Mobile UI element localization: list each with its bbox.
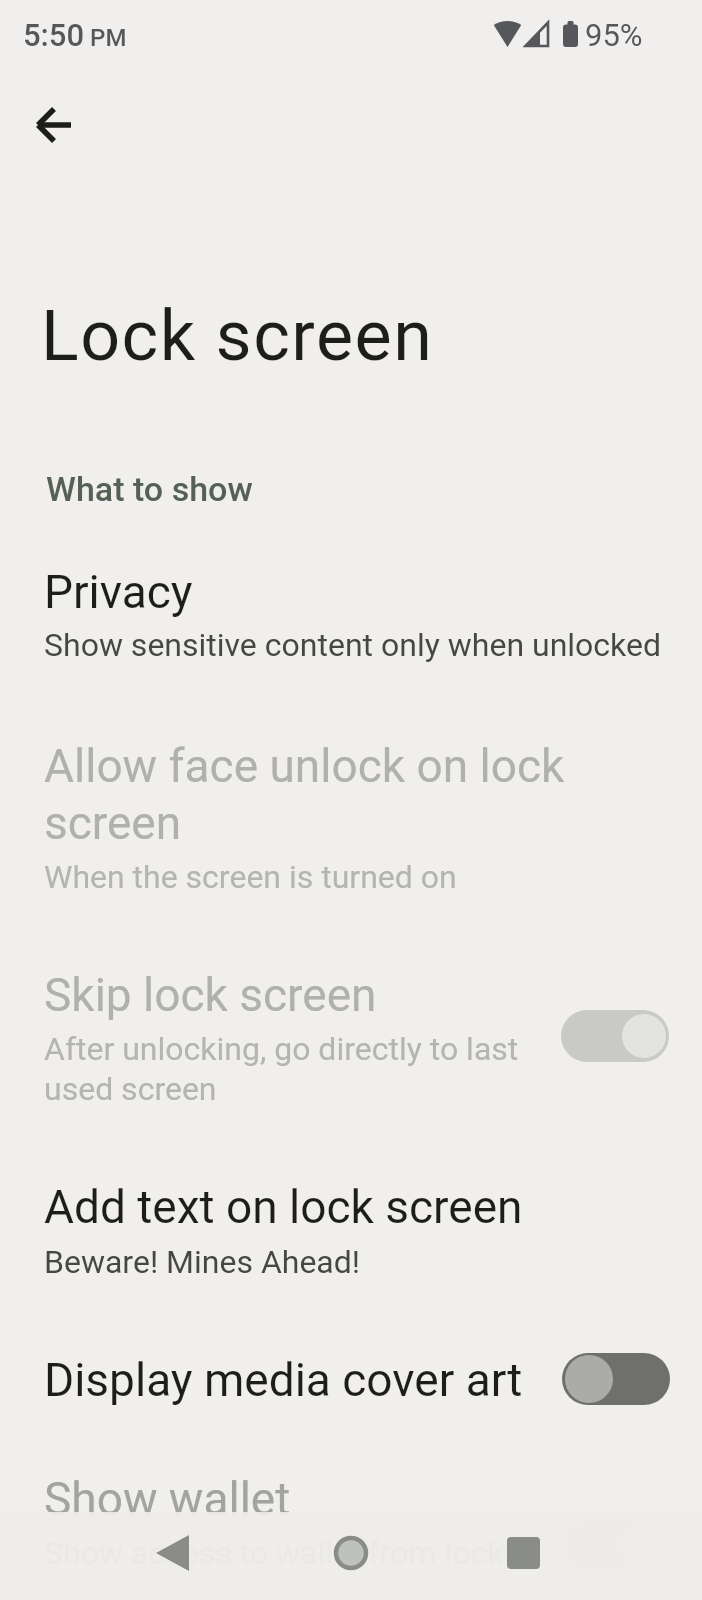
button[interactable] <box>145 1525 201 1581</box>
button[interactable] <box>561 1010 669 1062</box>
button[interactable] <box>562 1353 670 1405</box>
staticText: Show wallet <box>44 1472 291 1526</box>
staticText: 5:50 PM <box>23 17 127 53</box>
button[interactable]: Privacy <box>0 550 702 680</box>
button[interactable] <box>28 98 82 152</box>
staticText: 95% <box>585 17 643 53</box>
staticText: When the screen is turned on <box>44 858 457 896</box>
button[interactable]: Show wallet <box>0 1465 702 1600</box>
button[interactable] <box>495 1525 551 1581</box>
staticText: Add text on lock screen <box>44 1180 523 1234</box>
button[interactable]: Add text on lock screen <box>0 1165 702 1295</box>
staticText: Allow face unlock on lock screen <box>44 739 565 850</box>
staticText: Privacy <box>44 565 193 619</box>
staticText: Show sensitive content only when unlocke… <box>44 626 661 664</box>
staticText: Skip lock screen <box>44 968 377 1022</box>
button[interactable] <box>323 1525 379 1581</box>
staticText: Display media cover art <box>44 1353 523 1407</box>
button[interactable]: Display media cover art <box>0 1340 702 1420</box>
staticText: After unlocking, go directly to last use… <box>44 1030 519 1107</box>
staticText: Show access to wallet from lock <box>44 1534 504 1572</box>
staticText: What to show <box>46 469 253 509</box>
staticText: Lock screen <box>41 295 434 377</box>
staticText: Beware! Mines Ahead! <box>44 1243 361 1281</box>
